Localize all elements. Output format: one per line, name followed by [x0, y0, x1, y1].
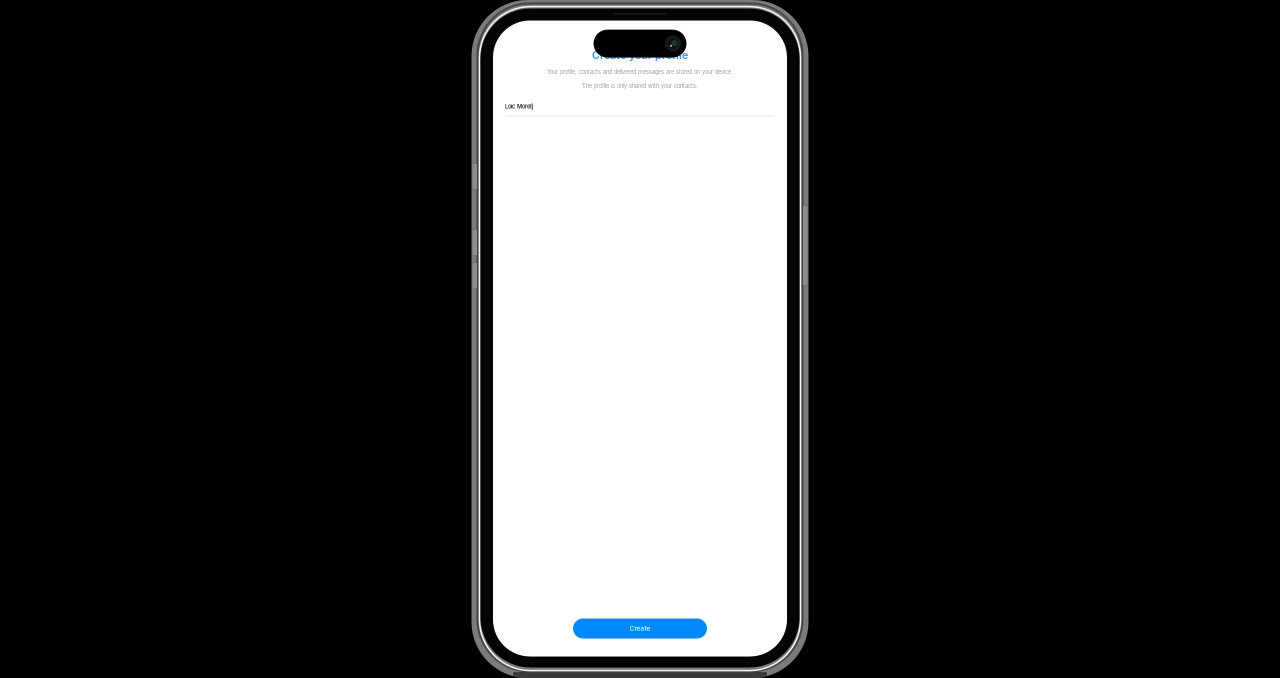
button[interactable]: Loïc Morel	[505, 102, 775, 116]
staticText: Create your profile	[592, 48, 688, 61]
staticText: Your profile, contacts and delivered mes…	[547, 69, 733, 75]
staticText: The profile is only shared with your con…	[582, 83, 698, 89]
button[interactable]: Create	[573, 618, 707, 638]
staticText: Loïc Morel	[505, 103, 531, 110]
staticText: Create	[629, 625, 650, 632]
